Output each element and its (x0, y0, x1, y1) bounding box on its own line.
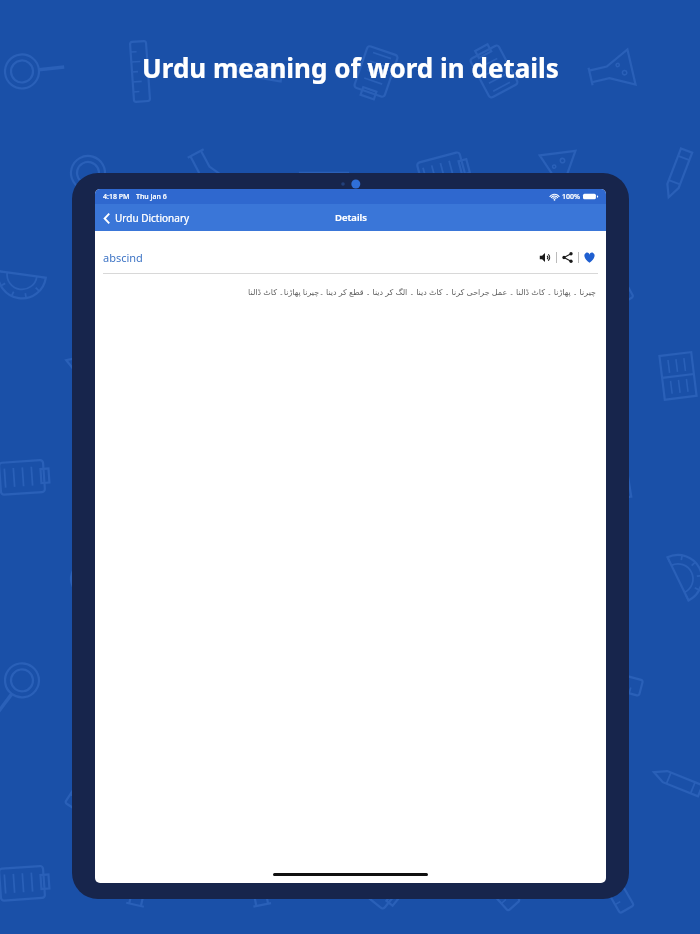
button[interactable]: abscind (103, 250, 143, 265)
button[interactable]: Play pronunciation (537, 249, 554, 266)
button[interactable]: Urdu Dictionary (101, 208, 192, 228)
button[interactable]: Share (559, 249, 576, 266)
button[interactable]: Favorite (581, 249, 598, 266)
staticText: 4:18 PM (103, 192, 130, 202)
staticText: Urdu meaning of word in details (142, 50, 559, 85)
staticText: چیرنا ۔ پھاڑنا ۔ کاٹ ڈالنا ۔ عمل جراحی ک… (248, 286, 596, 297)
staticText: 100% (562, 192, 580, 202)
staticText: Thu Jan 6 (136, 192, 167, 202)
staticText: Urdu Dictionary (115, 211, 190, 225)
staticText: Details (335, 211, 367, 224)
